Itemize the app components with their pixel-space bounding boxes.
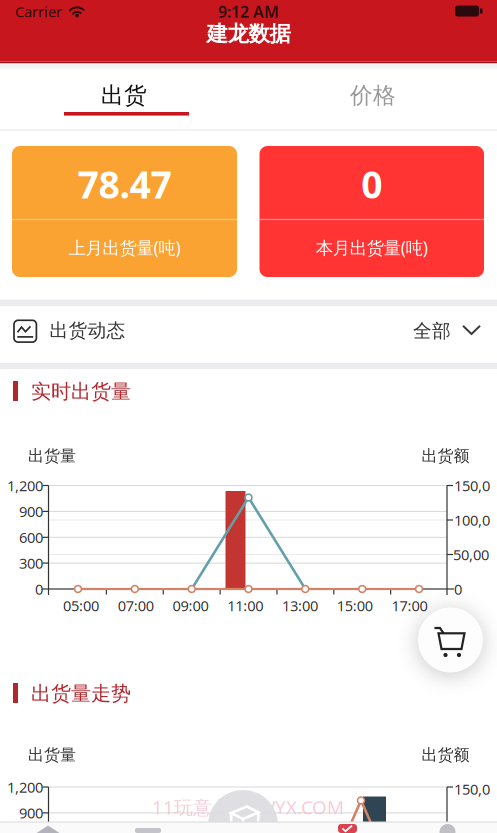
staticText: 0 <box>454 579 462 599</box>
staticText: Carrier <box>15 2 62 21</box>
staticText: 150,0 <box>454 779 490 799</box>
button[interactable]: 购物车 <box>418 607 483 672</box>
button[interactable]: 价格 <box>249 71 497 120</box>
button[interactable]: 我的 <box>398 822 497 833</box>
staticText: 78.47 <box>77 159 171 209</box>
staticText: 出货量 <box>28 446 76 466</box>
staticText: 全部 <box>413 319 451 342</box>
button[interactable]: 出货 <box>0 71 248 120</box>
staticText: 出货量走势 <box>31 681 131 706</box>
staticText: 出货量 <box>28 745 76 765</box>
staticText: 07:00 <box>118 596 154 615</box>
staticText: 100,0 <box>454 510 490 530</box>
staticText: 上月出货量(吨) <box>68 236 180 259</box>
staticText: 11玩意儿·11WYX.COM <box>152 795 344 819</box>
staticText: 300 <box>19 553 43 573</box>
staticText: 11:00 <box>227 596 263 615</box>
button[interactable]: 首页 <box>0 822 99 833</box>
button[interactable]: 0 <box>259 146 484 277</box>
staticText: 900 <box>19 502 43 521</box>
staticText: 50,00 <box>453 545 489 564</box>
staticText: 本月出货量(吨) <box>316 236 428 259</box>
staticText: 9:12 AM <box>218 1 279 22</box>
staticText: 13:00 <box>282 596 318 615</box>
staticText: 900 <box>19 803 43 823</box>
staticText: 09:00 <box>172 596 208 615</box>
button[interactable]: 出货动态 <box>0 306 497 363</box>
staticText: 出货 <box>101 82 147 109</box>
button[interactable]: 分类 <box>99 822 198 833</box>
staticText: 15:00 <box>337 596 373 615</box>
staticText: 0 <box>361 159 382 209</box>
staticText: 出货额 <box>421 446 469 466</box>
staticText: 17:00 <box>391 596 427 615</box>
staticText: 05:00 <box>63 596 99 615</box>
staticText: 出货动态 <box>49 319 125 342</box>
staticText: 1,200 <box>7 777 43 797</box>
staticText: 价格 <box>350 82 396 109</box>
button[interactable]: 数据 <box>298 822 397 833</box>
button[interactable]: 78.47 <box>12 146 237 277</box>
staticText: 600 <box>19 528 43 547</box>
staticText: 实时出货量 <box>31 379 131 404</box>
staticText: 1,200 <box>7 476 43 495</box>
staticText: 0 <box>35 579 43 599</box>
staticText: 建龙数据 <box>206 21 290 47</box>
staticText: 出货额 <box>421 745 469 765</box>
staticText: 150,0 <box>454 476 490 495</box>
